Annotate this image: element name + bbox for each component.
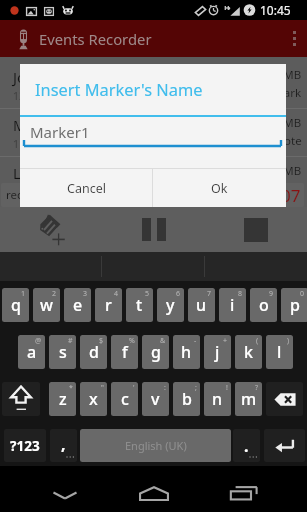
staticText: ? xyxy=(255,383,259,393)
staticText: k xyxy=(244,341,253,363)
button[interactable]: Back xyxy=(34,466,96,512)
staticText: x xyxy=(89,388,98,410)
staticText: i xyxy=(230,294,235,316)
staticText: r xyxy=(105,294,112,316)
staticText: b xyxy=(182,388,192,410)
button[interactable]: g xyxy=(142,335,169,369)
button[interactable]: n xyxy=(204,382,231,416)
staticText: e xyxy=(73,294,83,316)
staticText: Events Recorder xyxy=(39,29,152,49)
button[interactable]: e xyxy=(64,288,91,322)
staticText: " xyxy=(101,383,104,393)
button[interactable]: c xyxy=(111,382,138,416)
button[interactable]: h xyxy=(173,335,200,369)
button[interactable]: English (UK) xyxy=(80,429,231,462)
staticText: g xyxy=(151,341,161,363)
button[interactable]: f xyxy=(111,335,138,369)
staticText: 8 xyxy=(238,289,243,299)
staticText: o xyxy=(259,294,269,316)
staticText: 5 xyxy=(145,289,150,299)
staticText: 1.8 MB xyxy=(264,115,302,131)
staticText: ( xyxy=(256,336,259,346)
button[interactable]: q xyxy=(2,288,29,322)
staticText: $ xyxy=(99,336,104,346)
button[interactable]: i xyxy=(219,288,246,322)
button[interactable]: Add marker xyxy=(0,207,103,252)
button[interactable]: p xyxy=(281,288,307,322)
button[interactable]: Backspace xyxy=(266,382,303,416)
button[interactable]: y xyxy=(157,288,184,322)
staticText: m xyxy=(241,388,257,410)
staticText: Marker1 xyxy=(30,122,90,142)
staticText: z xyxy=(59,388,67,410)
button[interactable]: z xyxy=(49,382,76,416)
staticText: 3 xyxy=(83,289,88,299)
button[interactable]: j xyxy=(204,335,231,369)
staticText: - xyxy=(194,336,197,346)
staticText: 10/05/2015 14:05 xyxy=(13,185,99,187)
button[interactable]: Stop xyxy=(205,207,307,252)
staticText: * xyxy=(69,383,73,393)
staticText: 0 xyxy=(300,289,305,299)
button[interactable]: . xyxy=(233,429,260,462)
staticText: 1.2 MB xyxy=(264,67,302,83)
staticText: 11/05/2015 08:20 xyxy=(13,137,99,151)
button[interactable]: b xyxy=(173,382,200,416)
staticText: q xyxy=(11,294,21,316)
button[interactable]: Shift xyxy=(2,382,40,416)
staticText: ) xyxy=(287,336,290,346)
button[interactable]: t xyxy=(126,288,153,322)
button[interactable]: v xyxy=(142,382,169,416)
button[interactable]: m xyxy=(235,382,262,416)
button[interactable]: l xyxy=(266,335,293,369)
button[interactable]: o xyxy=(250,288,277,322)
button[interactable]: a xyxy=(18,335,45,369)
button[interactable]: More options xyxy=(281,20,307,57)
button[interactable]: Ok xyxy=(153,169,286,207)
staticText: y xyxy=(166,294,175,316)
staticText: John meeting xyxy=(13,67,105,87)
button[interactable]: ?123 xyxy=(4,429,46,462)
staticText: note xyxy=(277,133,302,149)
staticText: u xyxy=(196,294,207,316)
button[interactable]: x xyxy=(80,382,107,416)
button[interactable]: u xyxy=(188,288,215,322)
staticText: p xyxy=(290,294,300,316)
button[interactable]: Morning note xyxy=(0,109,307,156)
staticText: 10:45 xyxy=(260,2,291,18)
staticText: j xyxy=(215,341,220,363)
button[interactable]: Home xyxy=(123,466,185,512)
button[interactable]: Enter xyxy=(264,429,305,462)
staticText: Cancel xyxy=(67,180,106,197)
button[interactable]: k xyxy=(235,335,262,369)
staticText: 7 xyxy=(207,289,212,299)
staticText: l xyxy=(277,341,282,363)
button[interactable]: , xyxy=(50,429,77,462)
staticText: 12/05/2015 10:15 xyxy=(13,89,99,103)
button[interactable]: s xyxy=(49,335,76,369)
button[interactable]: Recents xyxy=(213,466,275,512)
staticText: 2 xyxy=(52,289,57,299)
staticText: # xyxy=(68,336,73,346)
button[interactable]: Lecture 3 xyxy=(0,157,307,187)
button[interactable]: w xyxy=(33,288,60,322)
staticText: : xyxy=(164,383,166,393)
staticText: w xyxy=(40,294,53,316)
button[interactable]: Pause xyxy=(103,207,205,252)
staticText: 4 xyxy=(114,289,119,299)
staticText: n xyxy=(212,388,223,410)
staticText: d xyxy=(89,341,99,363)
staticText: h xyxy=(181,341,192,363)
staticText: % xyxy=(129,336,135,346)
staticText: v xyxy=(151,388,160,410)
staticText: Insert Marker's Name xyxy=(35,78,203,100)
button[interactable]: John meeting xyxy=(0,61,307,108)
staticText: s xyxy=(59,341,67,363)
button[interactable]: d xyxy=(80,335,107,369)
button[interactable]: r xyxy=(95,288,122,322)
staticText: mark xyxy=(273,85,302,101)
button[interactable]: Cancel xyxy=(20,169,152,207)
